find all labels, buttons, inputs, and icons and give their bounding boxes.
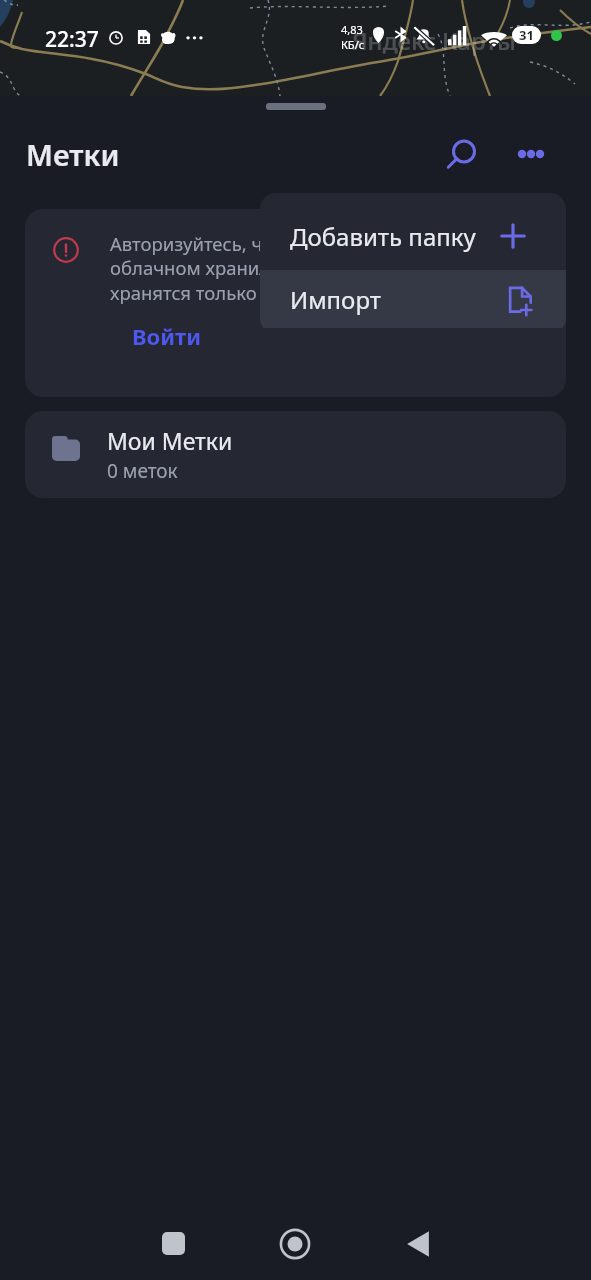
- button[interactable]: Мои Метки: [25, 411, 566, 498]
- staticText: 4,83: [341, 22, 363, 37]
- staticText: 0 меток: [107, 458, 178, 484]
- staticText: 31: [519, 26, 534, 44]
- staticText: Войти: [132, 321, 201, 351]
- button[interactable]: Home: [271, 1220, 319, 1268]
- staticText: Авторизуйтесь, чтобы сохранять метки в о…: [110, 231, 552, 306]
- button[interactable]: Recents: [149, 1219, 197, 1267]
- staticText: Добавить папку: [290, 220, 476, 253]
- button[interactable]: Back: [394, 1220, 442, 1268]
- staticText: 22:37: [45, 25, 99, 54]
- button[interactable]: Ещё: [507, 130, 555, 178]
- staticText: Импорт: [290, 283, 381, 316]
- button[interactable]: Поиск: [437, 130, 485, 178]
- button[interactable]: Импорт: [260, 270, 566, 328]
- staticText: Метки: [26, 135, 120, 174]
- button[interactable]: Войти: [114, 313, 219, 359]
- staticText: КБ/с: [341, 37, 365, 52]
- button[interactable]: Добавить папку: [260, 202, 566, 270]
- staticText: Яндекс Карты: [352, 24, 516, 57]
- staticText: Мои Метки: [107, 425, 233, 456]
